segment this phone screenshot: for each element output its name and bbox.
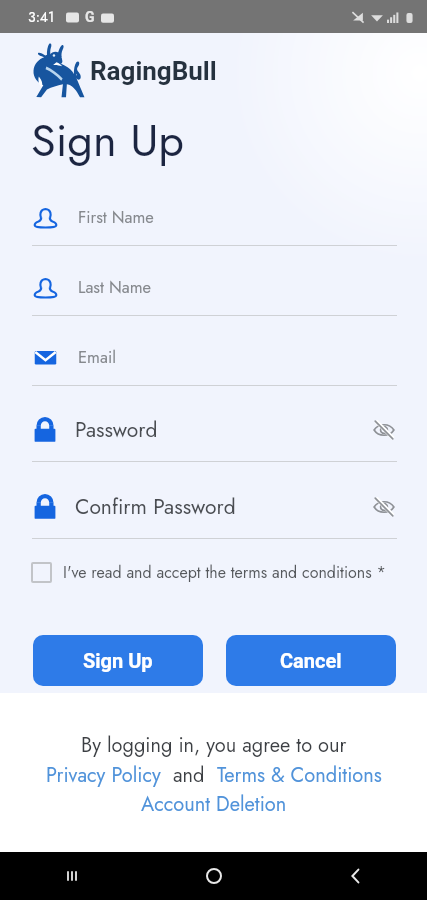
button[interactable]: Account Deletion <box>141 790 287 819</box>
button[interactable]: Confirm Password <box>0 462 427 538</box>
staticText: Terms & Conditions <box>217 761 382 790</box>
staticText: Cancel <box>280 649 342 672</box>
button[interactable]: Recents <box>0 852 143 900</box>
button[interactable]: Back <box>285 852 427 900</box>
button[interactable]: Privacy Policy <box>46 761 161 790</box>
staticText: First Name <box>78 205 154 229</box>
staticText: Sign Up <box>31 108 184 173</box>
button[interactable]: Home <box>143 852 285 900</box>
button[interactable]: Show password <box>371 417 397 443</box>
button[interactable]: I've read and accept the terms and condi… <box>0 539 427 586</box>
button[interactable]: Show password <box>371 494 397 520</box>
button[interactable]: Password <box>0 386 427 461</box>
button[interactable]: Cancel <box>226 635 396 686</box>
staticText: Privacy Policy <box>46 761 161 790</box>
staticText: Last Name <box>78 275 152 299</box>
staticText: I've read and accept the terms and condi… <box>63 561 386 584</box>
staticText: Password <box>75 415 158 445</box>
button[interactable]: Email <box>0 316 427 385</box>
staticText: Email <box>78 345 116 369</box>
staticText: G <box>85 9 95 25</box>
staticText: By logging in, you agree to our <box>81 731 347 760</box>
button[interactable]: First Name <box>0 176 427 245</box>
button[interactable]: Sign Up <box>33 635 203 686</box>
staticText: Sign Up <box>83 649 153 672</box>
button[interactable]: Terms & Conditions <box>217 761 382 790</box>
staticText: 3:41 <box>28 7 55 27</box>
staticText: Account Deletion <box>141 790 287 819</box>
button[interactable]: Last Name <box>0 246 427 315</box>
staticText: Confirm Password <box>75 492 236 522</box>
staticText: RagingBull <box>90 56 217 86</box>
staticText: and <box>161 761 217 790</box>
